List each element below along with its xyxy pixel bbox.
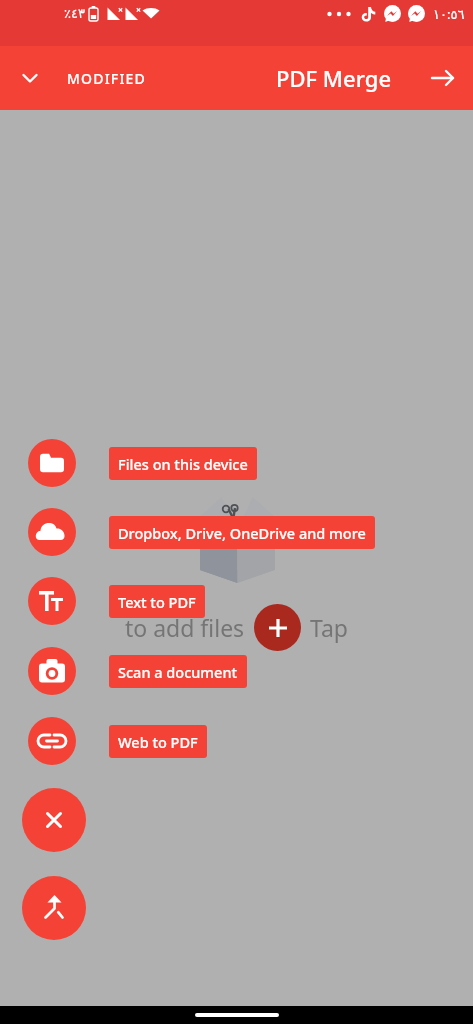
button[interactable]: Text to PDF [109, 585, 205, 618]
button[interactable]: Files on this device [109, 447, 257, 480]
staticText: PDF Merge [276, 63, 392, 93]
button[interactable]: Close [22, 788, 86, 852]
staticText: to add files [125, 612, 245, 643]
button[interactable]: Next [423, 58, 463, 98]
staticText: Text to PDF [118, 592, 196, 612]
button[interactable]: Expand [10, 58, 50, 98]
button[interactable]: Web to PDF [28, 717, 76, 765]
staticText: ٪٤٣ [64, 6, 85, 21]
button[interactable]: Merge [22, 876, 86, 940]
button[interactable]: Files on this device [28, 439, 76, 487]
button[interactable]: Text to PDF [28, 577, 76, 625]
button[interactable]: Scan a document [28, 647, 76, 695]
button[interactable]: Web to PDF [109, 725, 207, 758]
staticText: Dropbox, Drive, OneDrive and more [118, 523, 366, 543]
button[interactable]: MODIFIED [67, 69, 146, 88]
staticText: ١٠:٥٦ [433, 5, 465, 23]
staticText: MODIFIED [67, 69, 146, 88]
staticText: Files on this device [118, 454, 248, 474]
staticText: Web to PDF [118, 732, 198, 752]
staticText: Tap [310, 612, 348, 643]
staticText: Scan a document [118, 662, 238, 682]
button[interactable]: Scan a document [109, 655, 247, 688]
button[interactable]: Dropbox, Drive, OneDrive and more [109, 516, 375, 549]
button[interactable]: Dropbox, Drive, OneDrive and more [28, 508, 76, 556]
